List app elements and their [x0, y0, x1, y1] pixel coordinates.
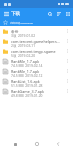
button[interactable]: Menu — [2, 8, 11, 19]
button[interactable]: Back — [52, 138, 64, 150]
staticText: RankList_1.6.apk — [11, 79, 40, 84]
staticText: 74.5 MB 2019-02-14 — [11, 63, 43, 67]
button[interactable]: com.tencent.tmgp.sgame — [0, 46, 73, 56]
staticText: RankMe_1.7.apk — [11, 59, 40, 64]
staticText: 备份 — [11, 29, 19, 34]
button[interactable]: More — [63, 86, 72, 96]
button[interactable]: Grid view — [63, 8, 72, 19]
staticText: 51.5 MB 2019-01-28 — [11, 83, 43, 87]
button[interactable]: Recents — [9, 138, 21, 150]
staticText: com.tencent.tmgp.sgame — [11, 49, 56, 54]
button[interactable]: More — [63, 56, 72, 66]
button[interactable]: RankList_1.6.apk — [0, 76, 73, 86]
button[interactable]: RankMe_1.7.apk — [0, 66, 73, 76]
staticText: 74.5 MB 2019-02-12 — [11, 73, 43, 77]
button[interactable]: Search — [45, 8, 54, 19]
staticText: 49.8 MB 2019-01-20 — [11, 93, 43, 97]
button[interactable]: More — [63, 46, 72, 56]
staticText: RankMe_1.7.apk — [11, 69, 40, 74]
button[interactable]: More — [63, 66, 72, 76]
button[interactable]: RankGame_3.7.apk — [0, 86, 73, 96]
staticText: com.tencent.gamehelper.smoba — [11, 39, 63, 44]
button[interactable]: Sort — [54, 8, 63, 19]
button[interactable]: More — [63, 36, 72, 46]
staticText: RankGame_3.7.apk — [11, 89, 45, 94]
staticText: 下载 — [11, 11, 21, 17]
button[interactable]: com.tencent.gamehelper.smoba — [0, 36, 73, 46]
button[interactable]: More — [63, 76, 72, 86]
button[interactable]: RankMe_1.7.apk — [0, 56, 73, 66]
staticText: 3项 2019-01-02 — [11, 33, 36, 38]
button[interactable]: Favorite — [2, 19, 9, 26]
staticText: 内部存储/Download — [10, 21, 33, 24]
staticText: 5项 2019-02-20 — [11, 53, 36, 58]
staticText: 2项 2019-03-11 — [11, 43, 36, 48]
button[interactable]: More — [63, 26, 72, 36]
button[interactable]: Home — [31, 138, 43, 150]
button[interactable]: 备份 — [0, 26, 73, 36]
